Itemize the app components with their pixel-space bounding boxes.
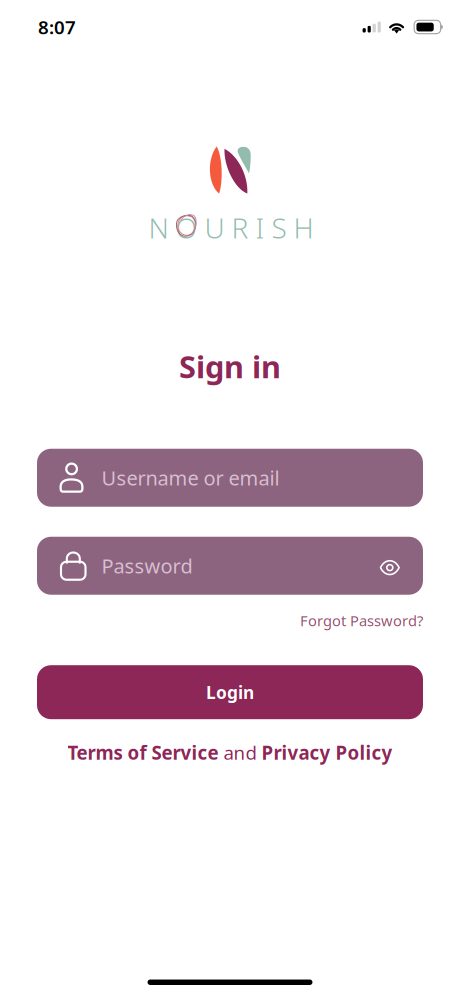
staticText: Terms of Service: [67, 740, 218, 765]
button[interactable]: Terms of Service: [67, 740, 218, 765]
staticText: Sign in: [179, 346, 281, 387]
staticText: 8:07: [38, 15, 76, 39]
staticText: Password: [101, 552, 192, 579]
button[interactable]: Login: [37, 665, 423, 719]
staticText: Login: [206, 681, 254, 704]
staticText: Forgot Password?: [300, 611, 423, 630]
button[interactable]: Forgot Password?: [300, 611, 423, 630]
staticText: Privacy Policy: [261, 740, 392, 765]
button[interactable]: Show password: [374, 552, 406, 580]
button[interactable]: Privacy Policy: [261, 740, 392, 765]
staticText: Username or email: [101, 464, 279, 491]
staticText: and: [218, 740, 261, 765]
staticText: N O U R I S H: [148, 209, 313, 246]
